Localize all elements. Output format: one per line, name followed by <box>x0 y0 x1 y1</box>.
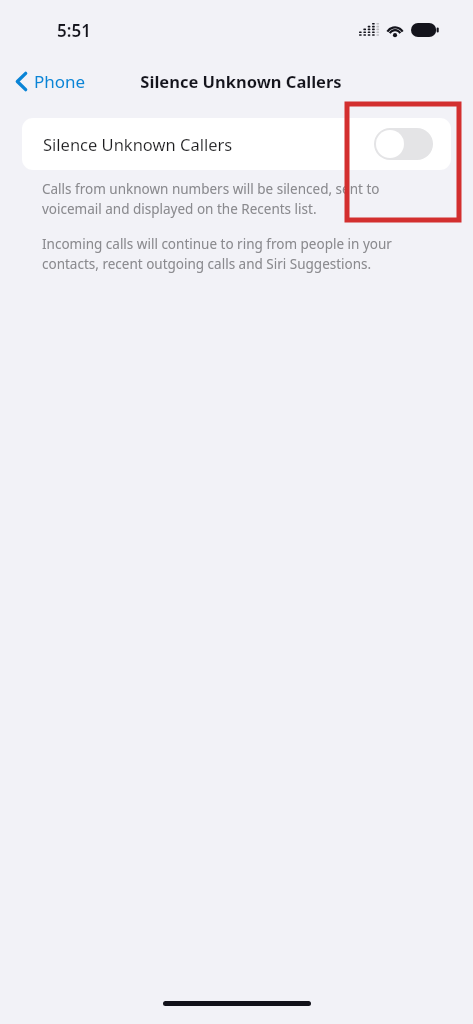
staticText: Silence Unknown Callers <box>43 133 233 155</box>
staticText: Silence Unknown Callers <box>140 70 342 92</box>
staticText: Calls from unknown numbers will be silen… <box>42 180 433 218</box>
staticText: 5:51 <box>57 19 91 42</box>
other: Back <box>16 72 27 91</box>
staticText: Incoming calls will continue to ring fro… <box>42 235 439 273</box>
button[interactable]: Silence Unknown Callers toggle <box>374 128 433 160</box>
button[interactable]: Back <box>10 66 92 97</box>
button[interactable]: Silence Unknown Callers <box>22 118 451 170</box>
staticText: Phone <box>34 70 86 93</box>
